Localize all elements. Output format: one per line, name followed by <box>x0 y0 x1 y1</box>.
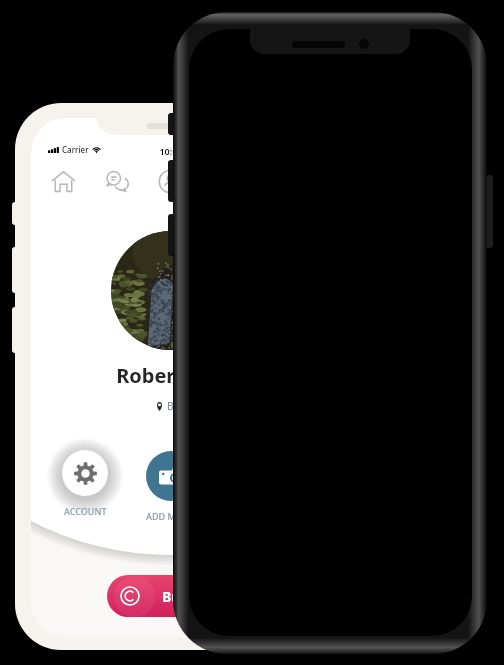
staticText: Bali <box>167 399 185 413</box>
staticText: ACCOUNT <box>64 505 107 517</box>
staticText: ADD MEDIA <box>146 510 197 522</box>
button[interactable]: ADD MEDIA <box>127 451 215 522</box>
button[interactable]: Home <box>49 167 77 195</box>
staticText: Robert Fox <box>31 362 309 389</box>
button[interactable]: Profile <box>156 167 184 195</box>
staticText: 10:09 <box>142 145 200 157</box>
button[interactable]: Buy <box>107 575 234 617</box>
button[interactable]: ACCOUNT <box>41 450 129 517</box>
button[interactable]: Messages <box>103 167 131 195</box>
staticText: Buy <box>162 587 189 606</box>
staticText: Carrier <box>62 144 89 155</box>
